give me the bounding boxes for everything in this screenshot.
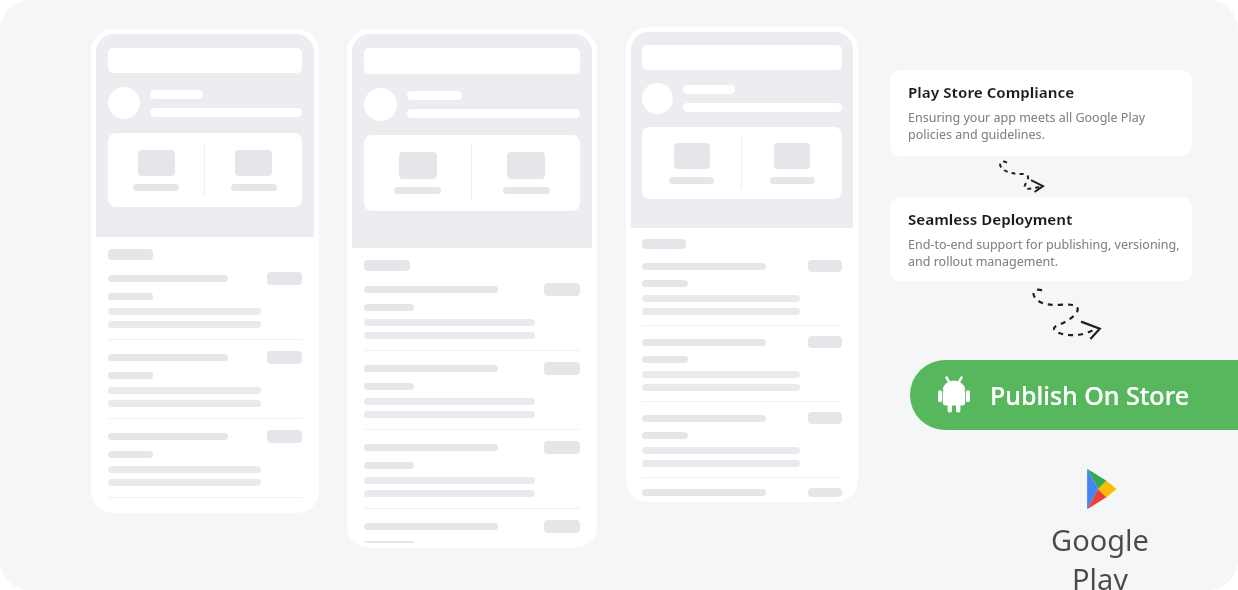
- staticText: Google Play: [1020, 520, 1180, 590]
- staticText: Ensuring your app meets all Google Play …: [908, 109, 1146, 143]
- button[interactable]: Publish On Store: [910, 360, 1238, 430]
- staticText: Seamless Deployment: [908, 209, 1073, 229]
- button[interactable]: Play Store Compliance: [890, 70, 1192, 156]
- staticText: Publish On Store: [990, 378, 1190, 412]
- staticText: Play Store Compliance: [908, 82, 1075, 102]
- staticText: End-to-end support for publishing, versi…: [908, 236, 1180, 270]
- button[interactable]: Seamless Deployment: [890, 197, 1192, 281]
